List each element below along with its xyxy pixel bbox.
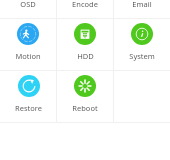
button[interactable]: HDD	[57, 19, 113, 70]
button[interactable]: Motion	[0, 19, 56, 70]
staticText: Email	[132, 0, 152, 9]
button[interactable]: Reboot	[57, 71, 113, 122]
button[interactable]: Email	[114, 0, 170, 18]
staticText: Restore	[15, 103, 42, 113]
staticText: Motion	[15, 51, 41, 61]
staticText: Encode	[72, 0, 98, 9]
button[interactable]: Restore	[0, 71, 56, 122]
staticText: System	[129, 51, 155, 61]
button[interactable]: System	[114, 19, 170, 70]
staticText: OSD	[20, 0, 36, 9]
staticText: HDD	[77, 51, 94, 61]
button[interactable]: Encode	[57, 0, 113, 18]
button[interactable]: OSD	[0, 0, 56, 18]
staticText: Reboot	[72, 103, 98, 113]
